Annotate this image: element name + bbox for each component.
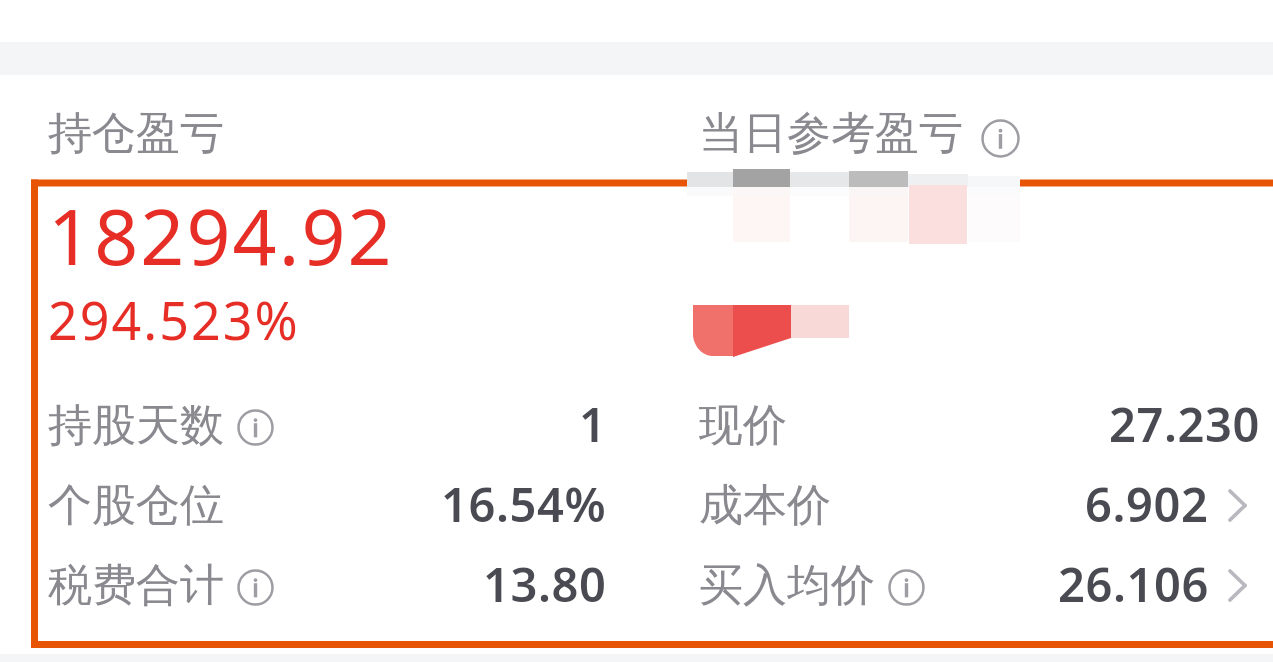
staticText: 持仓盈亏 (48, 106, 224, 161)
button[interactable]: 现价 (699, 396, 1260, 454)
staticText: 持股天数 (48, 398, 224, 453)
staticText: 买入均价 (699, 558, 875, 613)
button[interactable]: 当日参考盈亏 (699, 106, 1020, 161)
staticText: 26.106 (1058, 552, 1209, 610)
staticText: 16.54% (441, 472, 607, 530)
other: 买入均价 说明 (888, 569, 925, 606)
button[interactable]: 个股仓位 (48, 476, 607, 534)
staticText: 18294.92 (48, 183, 394, 288)
staticText: 个股仓位 (48, 478, 224, 533)
staticText: 税费合计 (48, 558, 224, 613)
other: 税费合计 说明 (237, 569, 274, 606)
button[interactable]: 持股天数 (48, 396, 607, 454)
staticText: 现价 (699, 398, 787, 453)
other: 查看成本价 明细 (1228, 489, 1247, 522)
button[interactable]: 买入均价 (699, 556, 1247, 614)
staticText: 1 (579, 392, 607, 450)
staticText: 27.230 (1109, 392, 1260, 450)
staticText: 13.80 (483, 552, 607, 610)
other: 当日参考盈亏说明 (981, 119, 1020, 158)
other: 查看买入均价 明细 (1228, 569, 1247, 602)
staticText: 成本价 (699, 478, 831, 533)
button[interactable]: 持仓盈亏 (48, 106, 224, 161)
staticText: 294.523% (48, 284, 300, 355)
button[interactable]: 成本价 (699, 476, 1247, 534)
staticText: 6.902 (1085, 472, 1209, 530)
button[interactable]: 税费合计 (48, 556, 607, 614)
staticText: 当日参考盈亏 (699, 106, 963, 161)
other: 持股天数 说明 (237, 409, 274, 446)
